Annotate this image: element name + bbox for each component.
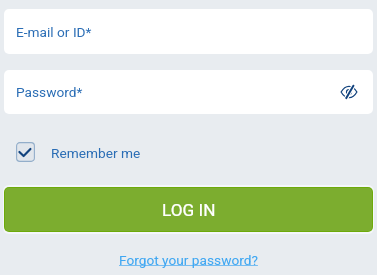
button[interactable]: Remember me [16, 141, 141, 162]
button[interactable]: E-mail or ID* [4, 9, 373, 54]
staticText: Remember me [51, 145, 141, 161]
button[interactable]: Show password [336, 79, 362, 105]
staticText: LOG IN [162, 200, 216, 220]
staticText: Password* [16, 84, 83, 100]
button[interactable]: LOG IN [5, 188, 372, 231]
button[interactable]: Password* [4, 70, 373, 114]
button[interactable]: Forgot your password? [119, 252, 258, 268]
staticText: E-mail or ID* [16, 24, 92, 40]
